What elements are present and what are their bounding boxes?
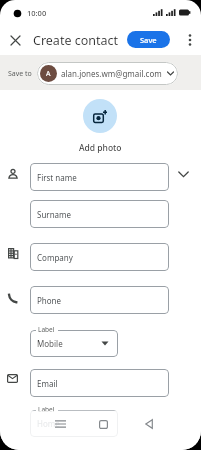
button[interactable]: Home: [30, 410, 118, 437]
button[interactable]: A: [37, 62, 178, 85]
button[interactable]: Save: [127, 31, 170, 48]
staticText: Label: [38, 325, 55, 334]
staticText: Create contact: [33, 32, 119, 49]
button[interactable]: Company: [30, 243, 169, 271]
staticText: Label: [38, 405, 55, 414]
button[interactable]: [183, 32, 197, 48]
button[interactable]: Phone: [30, 286, 169, 314]
button[interactable]: Surname: [30, 200, 169, 228]
staticText: Save: [140, 35, 157, 45]
staticText: Mobile: [37, 338, 63, 349]
staticText: Email: [37, 378, 58, 389]
staticText: Company: [37, 252, 73, 263]
staticText: Surname: [37, 209, 72, 220]
staticText: Phone: [37, 295, 62, 306]
button[interactable]: Mobile: [30, 330, 118, 357]
staticText: First name: [37, 172, 77, 183]
button[interactable]: [91, 416, 115, 432]
button[interactable]: [83, 99, 117, 133]
button[interactable]: Email: [30, 369, 169, 397]
button[interactable]: [48, 416, 72, 432]
staticText: 10:00: [27, 8, 47, 18]
button[interactable]: [8, 33, 22, 47]
staticText: alan.jones.wm@gmail.com: [61, 68, 162, 79]
staticText: Save to: [8, 69, 32, 79]
staticText: Home: [37, 418, 60, 429]
button[interactable]: [137, 416, 161, 432]
button[interactable]: First name: [30, 163, 169, 191]
staticText: Add photo: [79, 142, 122, 154]
staticText: A: [46, 69, 51, 79]
